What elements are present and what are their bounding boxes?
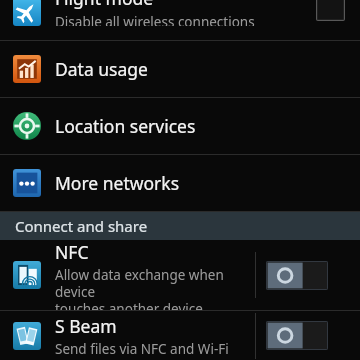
button[interactable]: NFC — [0, 240, 360, 310]
staticText: Disable all wireless connections — [55, 13, 255, 26]
staticText: More networks — [55, 171, 180, 195]
button[interactable]: Toggle, off — [266, 261, 328, 290]
staticText: Send files via NFC and Wi-Fi — [55, 340, 229, 358]
button[interactable]: Location services — [0, 98, 360, 154]
button[interactable]: Toggle, off — [266, 321, 328, 350]
button[interactable]: S Beam — [0, 311, 360, 360]
staticText: NFC — [55, 240, 89, 264]
staticText: Allow data exchange when device touches … — [55, 266, 253, 310]
button[interactable]: Data usage — [0, 41, 360, 97]
staticText: S Beam — [55, 314, 117, 338]
staticText: Connect and share — [15, 216, 148, 236]
staticText: Data usage — [55, 57, 148, 81]
button[interactable]: Flight mode — [0, 0, 360, 40]
button[interactable]: Flight mode checkbox — [316, 0, 345, 21]
button[interactable]: More networks — [0, 155, 360, 211]
staticText: Flight mode — [55, 0, 154, 10]
staticText: Location services — [55, 114, 196, 138]
